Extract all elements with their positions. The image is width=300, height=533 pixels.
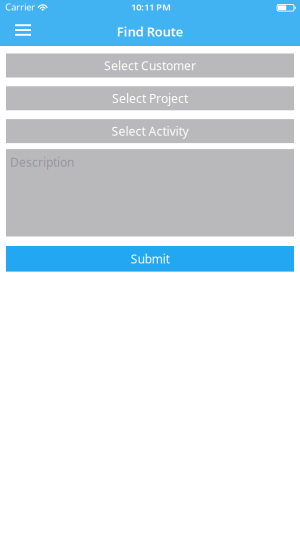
staticText: Select Customer bbox=[104, 57, 196, 73]
staticText: Select Project bbox=[112, 90, 188, 106]
staticText: Carrier bbox=[5, 1, 35, 13]
staticText: Submit bbox=[130, 251, 169, 267]
button[interactable]: Menu bbox=[0, 19, 43, 45]
button[interactable]: Select Activity bbox=[6, 119, 294, 143]
staticText: 10:11 PM bbox=[131, 1, 171, 13]
button[interactable]: Submit bbox=[6, 246, 294, 272]
button[interactable]: Select Customer bbox=[6, 53, 294, 77]
staticText: Select Activity bbox=[111, 123, 188, 139]
staticText: Find Route bbox=[116, 23, 183, 40]
button[interactable]: Select Project bbox=[6, 86, 294, 110]
staticText: Description bbox=[10, 154, 74, 170]
